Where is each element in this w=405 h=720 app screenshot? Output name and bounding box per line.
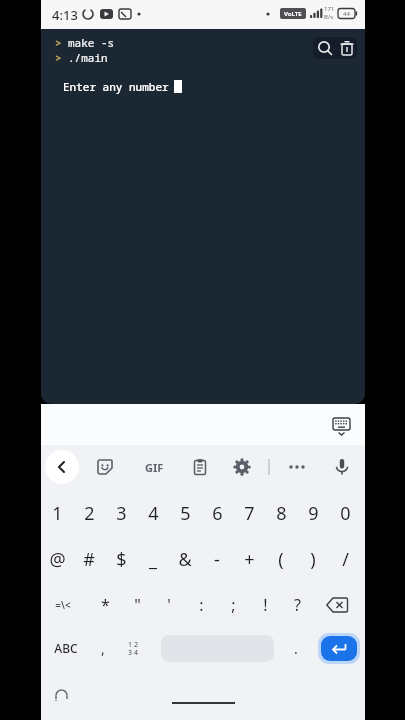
button[interactable]: =\< [41, 583, 85, 627]
button[interactable] [332, 417, 352, 437]
button[interactable] [45, 450, 79, 484]
staticText: , [101, 639, 105, 658]
staticText: ? [294, 594, 301, 616]
staticText: ABC [54, 640, 78, 656]
button[interactable]: # [73, 537, 105, 581]
button[interactable]: " [121, 583, 153, 627]
staticText: 4 [148, 501, 159, 526]
button[interactable] [190, 457, 210, 477]
staticText: 1 [52, 501, 63, 526]
button[interactable]: ? [281, 583, 313, 627]
button[interactable]: 9 [297, 491, 329, 535]
button[interactable]: ( [265, 537, 297, 581]
staticText: ' [167, 594, 171, 616]
button[interactable] [317, 583, 357, 627]
staticText: " [134, 594, 141, 616]
button[interactable]: _ [137, 537, 169, 581]
button[interactable]: 4 [137, 491, 169, 535]
staticText: / [342, 547, 349, 572]
staticText: Enter any number [63, 79, 169, 94]
staticText: @ [49, 547, 66, 572]
button[interactable] [287, 457, 307, 477]
staticText: VoLTE [284, 10, 302, 18]
button[interactable] [337, 38, 357, 58]
button[interactable]: . [282, 626, 310, 670]
staticText: > [55, 35, 62, 50]
staticText: 8 [276, 501, 287, 526]
button[interactable] [321, 636, 357, 661]
button[interactable] [315, 38, 335, 58]
staticText: ( [278, 547, 284, 572]
button[interactable]: ' [153, 583, 185, 627]
staticText: 9 [308, 501, 319, 526]
staticText: * [101, 594, 110, 616]
staticText: 7 [244, 501, 255, 526]
button[interactable] [332, 457, 352, 477]
button[interactable]: 0 [329, 491, 361, 535]
button[interactable]: + [233, 537, 265, 581]
button[interactable]: $ [105, 537, 137, 581]
button[interactable]: * [89, 583, 121, 627]
button[interactable]: @ [41, 537, 73, 581]
staticText: 1 2 3 4 [128, 640, 138, 657]
staticText: 44 [343, 10, 350, 18]
staticText: 4:13 [52, 6, 78, 24]
staticText: 2 [84, 501, 95, 526]
staticText: : [199, 594, 204, 616]
button[interactable]: 8 [265, 491, 297, 535]
staticText: - [214, 547, 220, 572]
button[interactable]: - [201, 537, 233, 581]
button[interactable]: 5 [169, 491, 201, 535]
staticText: 171 B/s [324, 5, 335, 21]
staticText: ) [310, 547, 316, 572]
button[interactable] [95, 457, 115, 477]
staticText: ./main [68, 50, 108, 65]
staticText: . [294, 639, 298, 658]
button[interactable]: : [185, 583, 217, 627]
button[interactable]: ! [249, 583, 281, 627]
button[interactable]: ; [217, 583, 249, 627]
button[interactable]: 1 2 3 4 [118, 626, 148, 670]
button[interactable]: ) [297, 537, 329, 581]
staticText: $ [116, 547, 127, 572]
staticText: 5 [180, 501, 191, 526]
staticText: GIF [145, 460, 164, 475]
staticText: make -s [68, 35, 115, 50]
button[interactable]: 2 [73, 491, 105, 535]
button[interactable]: 7 [233, 491, 265, 535]
staticText: > [55, 50, 62, 65]
staticText: # [83, 547, 95, 572]
staticText: =\< [55, 598, 71, 612]
staticText: 0 [340, 501, 351, 526]
button[interactable]: GIF [138, 457, 170, 477]
button[interactable]: & [169, 537, 201, 581]
staticText: + [244, 547, 255, 572]
staticText: ; [231, 594, 236, 616]
button[interactable]: 3 [105, 491, 137, 535]
staticText: & [178, 547, 192, 572]
staticText: ! [263, 594, 268, 616]
staticText: 3 [116, 501, 127, 526]
button[interactable]: > [41, 29, 365, 404]
staticText: 6 [212, 501, 223, 526]
button[interactable]: , [89, 626, 117, 670]
button[interactable] [232, 457, 252, 477]
button[interactable]: 6 [201, 491, 233, 535]
staticText: _ [149, 547, 157, 572]
button[interactable]: 1 [41, 491, 73, 535]
button[interactable]: / [329, 537, 361, 581]
button[interactable]: ABC [41, 626, 91, 670]
